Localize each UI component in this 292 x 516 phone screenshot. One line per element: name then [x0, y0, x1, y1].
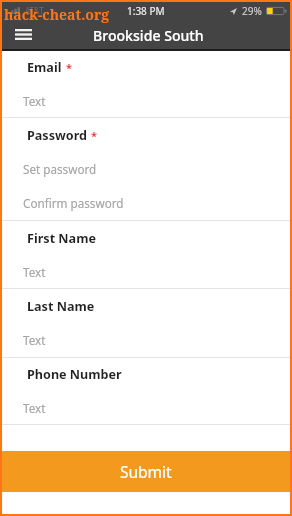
- staticText: Password: [27, 127, 87, 144]
- button[interactable]: Last Name: [2, 289, 290, 358]
- staticText: Text: [23, 93, 46, 109]
- staticText: 29%: [242, 4, 262, 18]
- button[interactable]: Password: [2, 118, 290, 221]
- staticText: Phone Number: [27, 366, 122, 383]
- staticText: Text: [23, 400, 46, 416]
- button[interactable]: First Name: [2, 221, 290, 289]
- staticText: Set password: [23, 161, 97, 177]
- staticText: AT&T: [25, 5, 44, 16]
- button[interactable]: Submit: [2, 451, 290, 492]
- staticText: Confirm password: [23, 195, 124, 211]
- staticText: *: [66, 60, 72, 75]
- staticText: 1:38 PM: [127, 4, 165, 18]
- button[interactable]: Phone Number: [2, 358, 290, 425]
- staticText: Text: [23, 264, 46, 280]
- staticText: Email: [27, 59, 62, 76]
- staticText: *: [91, 128, 97, 143]
- staticText: Last Name: [27, 298, 95, 315]
- button[interactable]: Open navigation menu: [9, 21, 38, 47]
- staticText: hack-cheat.org: [4, 5, 110, 24]
- staticText: First Name: [27, 230, 96, 247]
- staticText: Submit: [120, 461, 172, 482]
- button[interactable]: Email: [2, 51, 290, 118]
- staticText: Text: [23, 332, 46, 348]
- staticText: Brookside South: [93, 26, 204, 45]
